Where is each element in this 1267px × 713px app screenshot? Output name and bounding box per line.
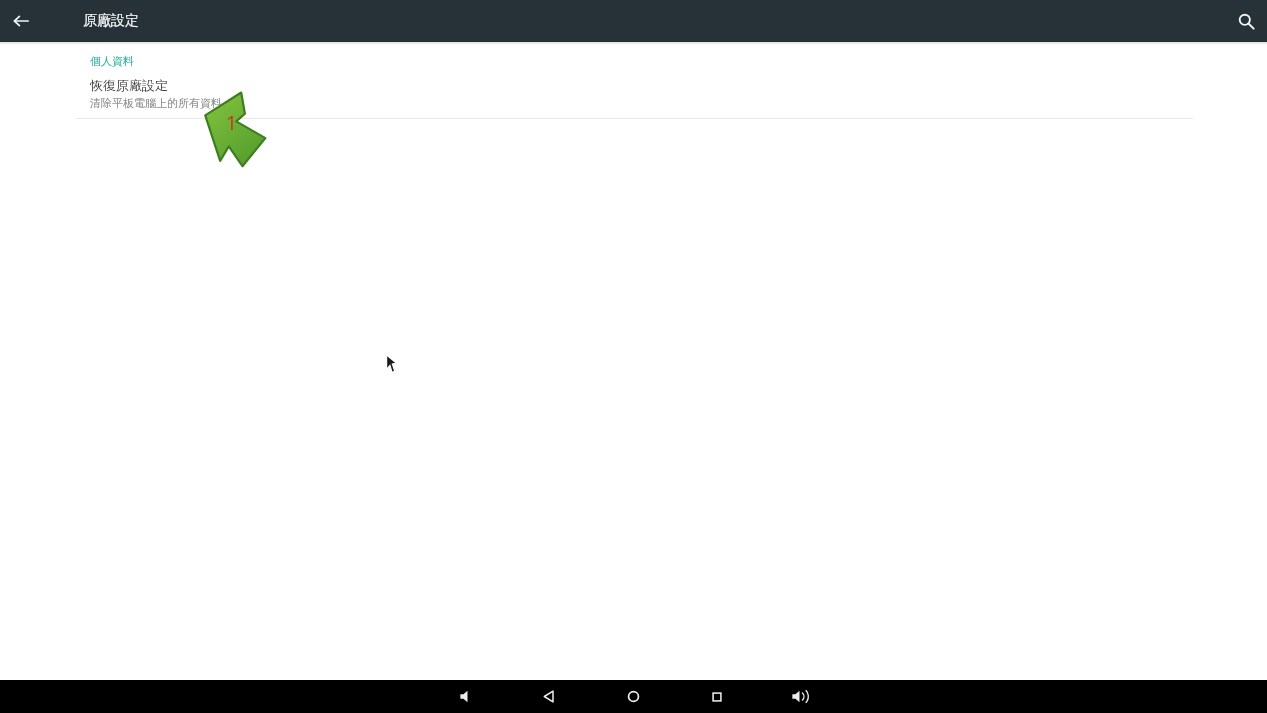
button[interactable]: Back [527, 680, 569, 713]
button[interactable]: 恢復原廠設定 [0, 77, 1267, 118]
button[interactable]: Search [1225, 0, 1267, 42]
staticText: 1 [226, 110, 237, 136]
button[interactable]: Volume up [778, 680, 820, 713]
staticText: 清除平板電腦上的所有資料 [90, 96, 222, 110]
button[interactable]: Recent apps [696, 680, 738, 713]
button[interactable]: Home [612, 680, 654, 713]
button[interactable]: Volume down [446, 680, 488, 713]
staticText: 個人資料 [90, 54, 134, 68]
button[interactable]: Back [0, 0, 42, 42]
staticText: 恢復原廠設定 [90, 77, 168, 93]
staticText: 原廠設定 [83, 12, 139, 30]
